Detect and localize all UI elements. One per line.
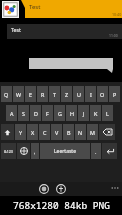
staticText: Leertaste (54, 148, 76, 155)
staticText: U (77, 91, 81, 98)
button[interactable]: Test (25, 0, 122, 18)
staticText: F (46, 110, 49, 117)
button[interactable]: A (6, 105, 17, 121)
button[interactable]: &123 (1, 143, 16, 159)
staticText: P (113, 91, 117, 98)
button[interactable]: D (30, 105, 41, 121)
staticText: D (34, 110, 38, 117)
staticText: 10:40 (112, 12, 122, 17)
button[interactable]: L (102, 105, 113, 121)
button[interactable]: Test (7, 24, 122, 39)
button[interactable]: , (31, 143, 39, 159)
staticText: J (83, 110, 85, 117)
button[interactable]: P (109, 86, 120, 102)
button[interactable]: B (63, 124, 74, 140)
staticText: 11:00 (109, 33, 118, 38)
button[interactable]: N (75, 124, 86, 140)
staticText: A (10, 110, 14, 117)
staticText: C (43, 129, 47, 136)
staticText: , (34, 148, 36, 155)
staticText: S (22, 110, 25, 117)
staticText: L (106, 110, 109, 117)
button[interactable]: Z (61, 86, 72, 102)
button[interactable]: X (27, 124, 38, 140)
button[interactable]: O (97, 86, 108, 102)
staticText: Y (19, 129, 23, 136)
button[interactable]: Attach (38, 183, 50, 195)
staticText: V (55, 129, 59, 136)
button[interactable]: Key (102, 143, 117, 159)
button[interactable]: J (78, 105, 89, 121)
staticText: Q (4, 91, 9, 98)
staticText: 768x1280 84kb PNG (13, 199, 110, 212)
button[interactable]: Key (17, 143, 30, 159)
staticText: G (58, 110, 62, 117)
button[interactable]: Q (1, 86, 12, 102)
button[interactable]: R (37, 86, 48, 102)
staticText: O (100, 91, 105, 98)
button[interactable]: F (42, 105, 53, 121)
staticText: R (41, 91, 45, 98)
staticText: W (16, 91, 22, 98)
staticText: Z (65, 91, 69, 98)
button[interactable]: G (54, 105, 65, 121)
button[interactable]: Leertaste (40, 143, 90, 159)
staticText: Test (11, 26, 21, 33)
staticText: K (94, 110, 98, 117)
button[interactable]: V (51, 124, 62, 140)
staticText: I (90, 91, 92, 98)
staticText: &123 (4, 149, 13, 154)
button[interactable]: More options (108, 182, 122, 196)
staticText: T (53, 91, 56, 98)
button[interactable]: Key (1, 124, 14, 140)
button[interactable]: H (66, 105, 77, 121)
button[interactable]: M (87, 124, 98, 140)
button[interactable]: E (25, 86, 36, 102)
staticText: . (95, 148, 97, 155)
staticText: H (70, 110, 74, 117)
staticText: M (90, 129, 95, 136)
button[interactable]: T (49, 86, 60, 102)
staticText: E (29, 91, 32, 98)
button[interactable]: S (18, 105, 29, 121)
button[interactable]: . (91, 143, 101, 159)
staticText: Test (29, 3, 41, 11)
button[interactable]: C (39, 124, 50, 140)
button[interactable]: W (13, 86, 24, 102)
button[interactable]: U (73, 86, 84, 102)
button[interactable]: Key (99, 124, 115, 140)
button[interactable]: Y (15, 124, 26, 140)
button[interactable]: Emoji (55, 183, 67, 195)
button[interactable]: I (85, 86, 96, 102)
button[interactable]: K (90, 105, 101, 121)
staticText: X (31, 129, 35, 136)
staticText: N (78, 129, 83, 136)
button[interactable]: Contact avatar (2, 1, 19, 18)
staticText: B (67, 129, 71, 136)
